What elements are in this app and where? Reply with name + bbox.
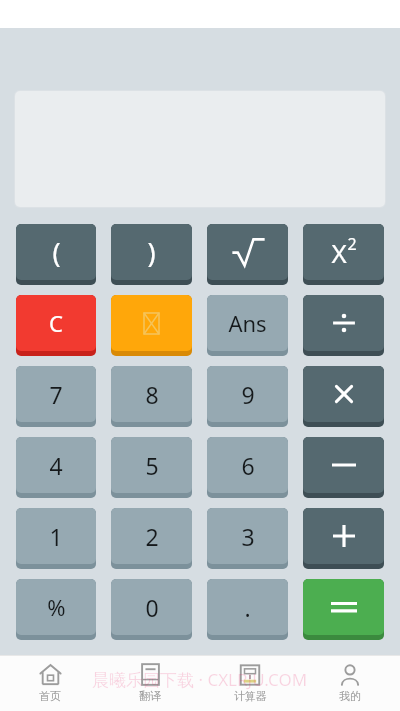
staticText: 1 <box>49 521 63 552</box>
staticText: 计算器 <box>234 689 267 703</box>
button[interactable]: 1 <box>16 508 96 569</box>
button[interactable]: Equals <box>303 579 384 640</box>
button[interactable]: 翻译 <box>100 655 200 711</box>
staticText: 翻译 <box>139 689 161 703</box>
button[interactable]: 0 <box>111 579 192 640</box>
button[interactable]: ( <box>16 224 96 285</box>
button[interactable]: 计算器 <box>200 655 300 711</box>
staticText: 6 <box>241 450 255 481</box>
staticText: ( <box>52 234 61 271</box>
staticText: 3 <box>241 521 255 552</box>
button[interactable]: 2 <box>111 508 192 569</box>
button[interactable]: 我的 <box>300 655 400 711</box>
button[interactable]: C <box>16 295 96 356</box>
staticText: 2 <box>347 233 357 255</box>
staticText: 5 <box>145 450 159 481</box>
button[interactable]: Ans <box>207 295 288 356</box>
staticText: 7 <box>49 379 63 410</box>
button[interactable]: Plus <box>303 508 384 569</box>
button[interactable]: Divide <box>303 295 384 356</box>
staticText: 首页 <box>39 689 61 703</box>
button[interactable]: 9 <box>207 366 288 427</box>
button[interactable]: % <box>16 579 96 640</box>
staticText: 晨曦乐园下载 · CXLRJU.COM <box>92 668 308 691</box>
button[interactable]: 8 <box>111 366 192 427</box>
button[interactable]: Minus <box>303 437 384 498</box>
button[interactable]: ) <box>111 224 192 285</box>
button[interactable]: X <box>303 224 384 285</box>
button[interactable]: 6 <box>207 437 288 498</box>
button[interactable]: 首页 <box>0 655 100 711</box>
staticText: % <box>47 592 66 622</box>
staticText: Ans <box>228 308 267 338</box>
staticText: X <box>331 235 347 270</box>
button[interactable]: 5 <box>111 437 192 498</box>
staticText: 0 <box>145 592 159 623</box>
button[interactable]: Multiply <box>303 366 384 427</box>
staticText: 9 <box>241 379 255 410</box>
staticText: 我的 <box>339 689 361 703</box>
button[interactable]: 4 <box>16 437 96 498</box>
button[interactable]: Backspace <box>111 295 192 356</box>
button[interactable]: Square root <box>207 224 288 285</box>
staticText: 8 <box>145 379 159 410</box>
button[interactable]: . <box>207 579 288 640</box>
staticText: 4 <box>49 450 63 481</box>
staticText: ) <box>147 234 156 271</box>
button[interactable]: 7 <box>16 366 96 427</box>
staticText: 2 <box>145 521 159 552</box>
staticText: . <box>244 592 251 623</box>
button[interactable]: 3 <box>207 508 288 569</box>
staticText: C <box>49 308 63 338</box>
